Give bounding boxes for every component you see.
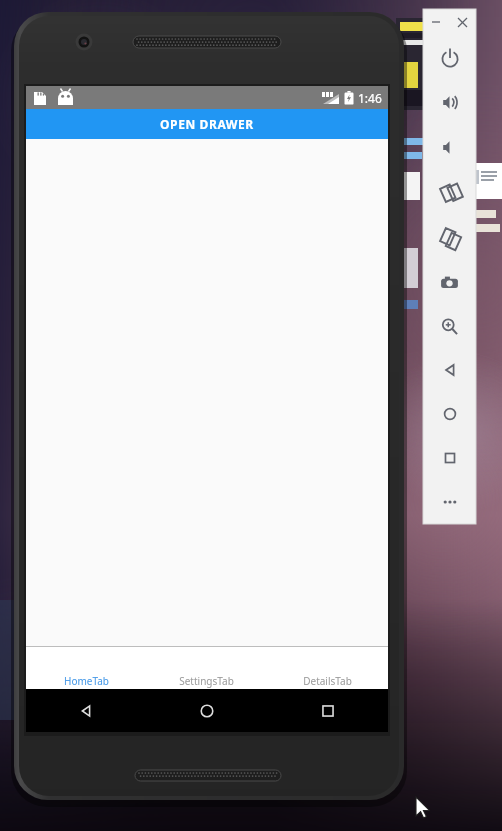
button[interactable]: Take screenshot: [423, 260, 476, 304]
button[interactable]: Volume up: [423, 80, 476, 125]
button[interactable]: SettingsTab: [146, 647, 267, 689]
button[interactable]: Overview: [423, 436, 476, 480]
staticText: HomeTab: [64, 674, 109, 688]
button[interactable]: More: [423, 480, 476, 524]
button[interactable]: DetailsTab: [267, 647, 388, 689]
button[interactable]: Rotate left: [423, 170, 476, 215]
button[interactable]: Recent apps: [267, 689, 388, 732]
button[interactable]: OPEN DRAWER: [26, 109, 388, 139]
button[interactable]: Rotate right: [423, 215, 476, 260]
button[interactable]: Home: [146, 689, 267, 732]
button[interactable]: Minimize: [423, 9, 449, 35]
staticText: DetailsTab: [303, 674, 352, 688]
button[interactable]: HomeTab: [26, 647, 146, 689]
button[interactable]: Home: [423, 392, 476, 436]
button[interactable]: Zoom: [423, 304, 476, 348]
staticText: 1:46: [358, 90, 382, 106]
button[interactable]: Volume down: [423, 125, 476, 170]
button[interactable]: Back: [26, 689, 146, 732]
button[interactable]: Back: [423, 348, 476, 392]
staticText: SettingsTab: [179, 674, 234, 688]
button[interactable]: Power: [423, 35, 476, 80]
button[interactable]: Close: [449, 9, 476, 35]
staticText: OPEN DRAWER: [160, 116, 254, 132]
